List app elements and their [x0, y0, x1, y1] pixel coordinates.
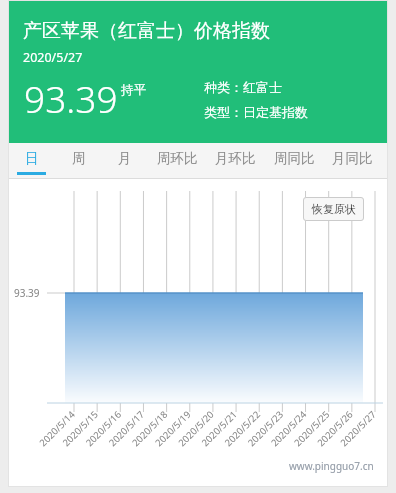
button[interactable]: 周环比 [152, 143, 203, 175]
button[interactable]: 月环比 [210, 143, 261, 175]
staticText: 日 [25, 150, 39, 167]
staticText: 类型：日定基指数 [204, 104, 308, 120]
staticText: 周环比 [157, 150, 198, 167]
staticText: 恢复原状 [312, 202, 356, 216]
staticText: 月环比 [215, 150, 256, 167]
button[interactable]: 周 [59, 143, 98, 175]
button[interactable]: 恢复原状 [303, 197, 364, 221]
staticText: 月 [118, 150, 132, 167]
button[interactable]: 周同比 [269, 143, 320, 175]
staticText: 93.39 [24, 73, 118, 123]
staticText: 周同比 [274, 150, 315, 167]
staticText: 周 [72, 150, 86, 167]
button[interactable]: 月 [105, 143, 144, 175]
staticText: 产区苹果（红富士）价格指数 [23, 19, 270, 43]
staticText: 持平 [121, 82, 146, 98]
button[interactable]: 日 [12, 143, 51, 175]
staticText: 2020/5/27 [23, 49, 83, 66]
staticText: 种类：红富士 [204, 79, 282, 95]
button[interactable]: 月同比 [327, 143, 378, 175]
staticText: 月同比 [332, 150, 373, 167]
